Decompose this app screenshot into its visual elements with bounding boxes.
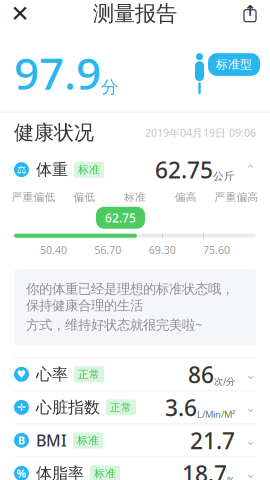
staticText: 标准 xyxy=(124,191,146,204)
button[interactable]: Share xyxy=(230,0,270,34)
staticText: ↑ xyxy=(244,2,256,19)
staticText: 偏高 xyxy=(175,191,197,204)
staticText: ⌄ xyxy=(245,367,256,382)
staticText: 69.30 xyxy=(149,243,176,257)
staticText: % xyxy=(16,466,26,480)
staticText: 次/分 xyxy=(214,375,235,387)
button[interactable]: ♥ xyxy=(0,358,270,390)
staticText: 标准 xyxy=(94,467,116,480)
staticText: 75.60 xyxy=(203,243,230,257)
staticText: 严重偏低 xyxy=(11,191,55,204)
staticText: 健康状况 xyxy=(14,120,94,145)
staticText: 标准型 xyxy=(216,57,252,72)
staticText: 公斤 xyxy=(213,170,235,183)
staticText: 标准 xyxy=(77,434,99,447)
staticText: 标准 xyxy=(78,163,100,176)
staticText: 21.7 xyxy=(190,425,235,455)
staticText: ✛ xyxy=(17,401,26,413)
staticText: 方式，维持好状态就很完美啦~ xyxy=(26,316,203,333)
button[interactable]: ✛ xyxy=(0,391,270,423)
staticText: 2019年04月19日 09:06 xyxy=(145,126,256,140)
button[interactable]: Close xyxy=(0,0,40,34)
staticText: % xyxy=(227,474,235,480)
staticText: 正常 xyxy=(78,368,100,381)
staticText: 心脏指数 xyxy=(36,397,100,417)
button[interactable]: % xyxy=(0,457,270,480)
staticText: 62.75 xyxy=(155,155,213,185)
staticText: 心率 xyxy=(36,364,68,384)
staticText: 97.9 xyxy=(14,43,101,102)
staticText: ✕ xyxy=(10,1,29,26)
staticText: 56.70 xyxy=(94,243,121,257)
staticText: 你的体重已经是理想的标准状态哦，保持健康合理的生活 xyxy=(26,281,234,314)
staticText: 分 xyxy=(101,77,118,98)
staticText: BMI xyxy=(36,430,67,451)
staticText: 86 xyxy=(188,359,214,389)
staticText: L/Min/M² xyxy=(197,408,235,420)
staticText: 62.75 xyxy=(105,210,136,226)
staticText: ⌄ xyxy=(245,400,256,415)
button[interactable]: ⚖ xyxy=(0,153,270,187)
staticText: 18.7 xyxy=(182,458,227,480)
staticText: 50.40 xyxy=(40,243,67,257)
staticText: ⌃ xyxy=(245,162,256,177)
staticText: 体脂率 xyxy=(36,463,84,480)
staticText: 偏低 xyxy=(73,191,95,204)
staticText: ⌄ xyxy=(245,433,256,448)
staticText: 严重偏高 xyxy=(215,191,259,204)
staticText: 正常 xyxy=(110,401,132,414)
staticText: ⌄ xyxy=(245,466,256,480)
staticText: B xyxy=(18,433,25,447)
staticText: 体重 xyxy=(36,160,68,179)
staticText: ⚖ xyxy=(16,164,26,176)
staticText: ♥ xyxy=(16,368,26,380)
staticText: 测量报告 xyxy=(93,1,177,27)
staticText: 3.6 xyxy=(165,392,197,422)
button[interactable]: B xyxy=(0,424,270,456)
